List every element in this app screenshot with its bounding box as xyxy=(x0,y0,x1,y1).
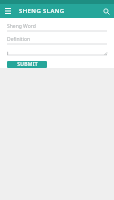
staticText: Definition xyxy=(7,36,31,43)
button[interactable]: Search xyxy=(100,5,112,17)
button[interactable]: SUBMIT xyxy=(7,61,47,68)
button[interactable]: Definition xyxy=(7,36,107,45)
staticText: SUBMIT xyxy=(17,61,38,68)
staticText: SHENG SLANG xyxy=(19,7,100,15)
button[interactable]: Example sentence xyxy=(7,49,107,56)
button[interactable]: Sheng Word xyxy=(7,23,107,32)
staticText: Sheng Word xyxy=(7,23,36,30)
button[interactable]: Open navigation menu xyxy=(2,5,14,17)
